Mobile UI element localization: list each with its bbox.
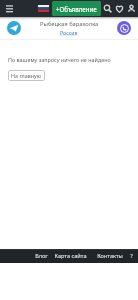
- button[interactable]: Menu: [2, 0, 16, 17]
- button[interactable]: Search: [101, 0, 113, 17]
- button[interactable]: Telegram: [7, 21, 21, 35]
- staticText: ?: [130, 252, 133, 260]
- button[interactable]: ?: [130, 252, 133, 260]
- button[interactable]: Россия: [60, 29, 78, 36]
- button[interactable]: +Объявление: [52, 1, 101, 16]
- button[interactable]: Блог: [35, 252, 48, 260]
- staticText: По вашему запросу ничего не найдено: [8, 56, 111, 63]
- button[interactable]: Language: [38, 5, 49, 12]
- staticText: +Объявление: [56, 5, 97, 13]
- button[interactable]: Favorites: [113, 0, 125, 17]
- staticText: Контакты: [97, 252, 123, 260]
- button[interactable]: Account: [125, 0, 137, 17]
- button[interactable]: На главную: [8, 70, 45, 81]
- button[interactable]: Контакты: [97, 252, 123, 260]
- button[interactable]: Карта сайта: [54, 252, 87, 260]
- staticText: Блог: [35, 252, 48, 260]
- staticText: На главную: [11, 72, 42, 79]
- staticText: Рыбецкая барахолка: [40, 20, 99, 28]
- button[interactable]: Viber: [117, 21, 131, 35]
- staticText: Карта сайта: [54, 252, 87, 260]
